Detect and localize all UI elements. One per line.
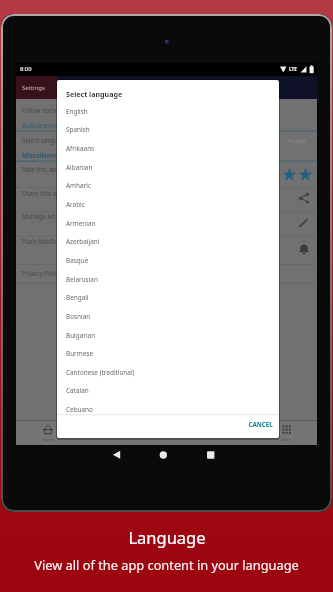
button[interactable]: Home: [34, 432, 62, 446]
button[interactable]: Bengali: [57, 288, 279, 307]
staticText: Share this app: [22, 189, 64, 197]
staticText: Language: [128, 526, 206, 548]
staticText: Azerbaijani: [66, 237, 100, 246]
staticText: Catalan: [66, 386, 89, 395]
button[interactable]: English: [283, 133, 311, 147]
staticText: Rate this app: [22, 165, 60, 173]
staticText: LTE: [289, 66, 297, 72]
staticText: Bulgarian: [66, 331, 96, 340]
button[interactable]: [156, 448, 172, 462]
staticText: English: [288, 137, 307, 144]
button[interactable]: Spanish: [57, 120, 279, 139]
button[interactable]: Albanian: [57, 158, 279, 177]
staticText: Select language: [22, 136, 69, 144]
button[interactable]: Amharic: [57, 176, 279, 195]
staticText: Manage Ad choices: [22, 212, 79, 220]
staticText: Burmese: [66, 349, 93, 358]
staticText: Arabic: [66, 200, 85, 209]
staticText: Cebuano: [66, 405, 93, 414]
button[interactable]: CANCEL: [244, 417, 277, 431]
staticText: Select language: [66, 89, 123, 99]
button[interactable]: English: [57, 102, 279, 121]
button[interactable]: Azerbaijani: [57, 232, 279, 251]
staticText: English: [66, 107, 88, 116]
button[interactable]: [203, 448, 219, 462]
staticText: Bosnian: [66, 312, 91, 321]
staticText: Afrikaans: [66, 144, 95, 153]
button[interactable]: Bulgarian: [57, 326, 279, 345]
button[interactable]: Basque: [57, 251, 279, 270]
button[interactable]: Burmese: [57, 344, 279, 363]
staticText: Spanish: [66, 125, 90, 134]
button[interactable]: Afrikaans: [57, 139, 279, 158]
button[interactable]: [108, 448, 124, 462]
button[interactable]: Cantonese (traditional): [57, 363, 279, 382]
staticText: CANCEL: [248, 420, 273, 428]
staticText: More: [281, 437, 291, 442]
button[interactable]: [16, 76, 57, 100]
staticText: Privacy Policy: [22, 269, 62, 277]
staticText: Armenian: [66, 219, 96, 228]
staticText: View all of the app content in your lang…: [34, 556, 299, 573]
staticText: Belarusian: [66, 275, 98, 284]
button[interactable]: Armenian: [57, 214, 279, 233]
staticText: Amharic: [66, 181, 91, 190]
staticText: Albanian: [66, 163, 93, 172]
staticText: Home: [43, 437, 54, 442]
staticText: Cantonese (traditional): [66, 368, 135, 377]
button[interactable]: Belarusian: [57, 270, 279, 289]
button[interactable]: Catalan: [57, 381, 279, 400]
button[interactable]: More: [272, 432, 300, 446]
staticText: Basque: [66, 256, 89, 265]
staticText: Auto-translate: [22, 121, 64, 129]
staticText: Push Notifications: [22, 237, 75, 245]
button[interactable]: Arabic: [57, 195, 279, 214]
button[interactable]: Cebuano: [57, 400, 279, 419]
staticText: Settings: [22, 84, 45, 92]
button[interactable]: Bosnian: [57, 307, 279, 326]
staticText: Follow social media: [22, 106, 79, 114]
staticText: Miscellaneous: [22, 151, 66, 159]
staticText: 8:00: [20, 65, 32, 73]
staticText: Bengali: [66, 293, 89, 302]
